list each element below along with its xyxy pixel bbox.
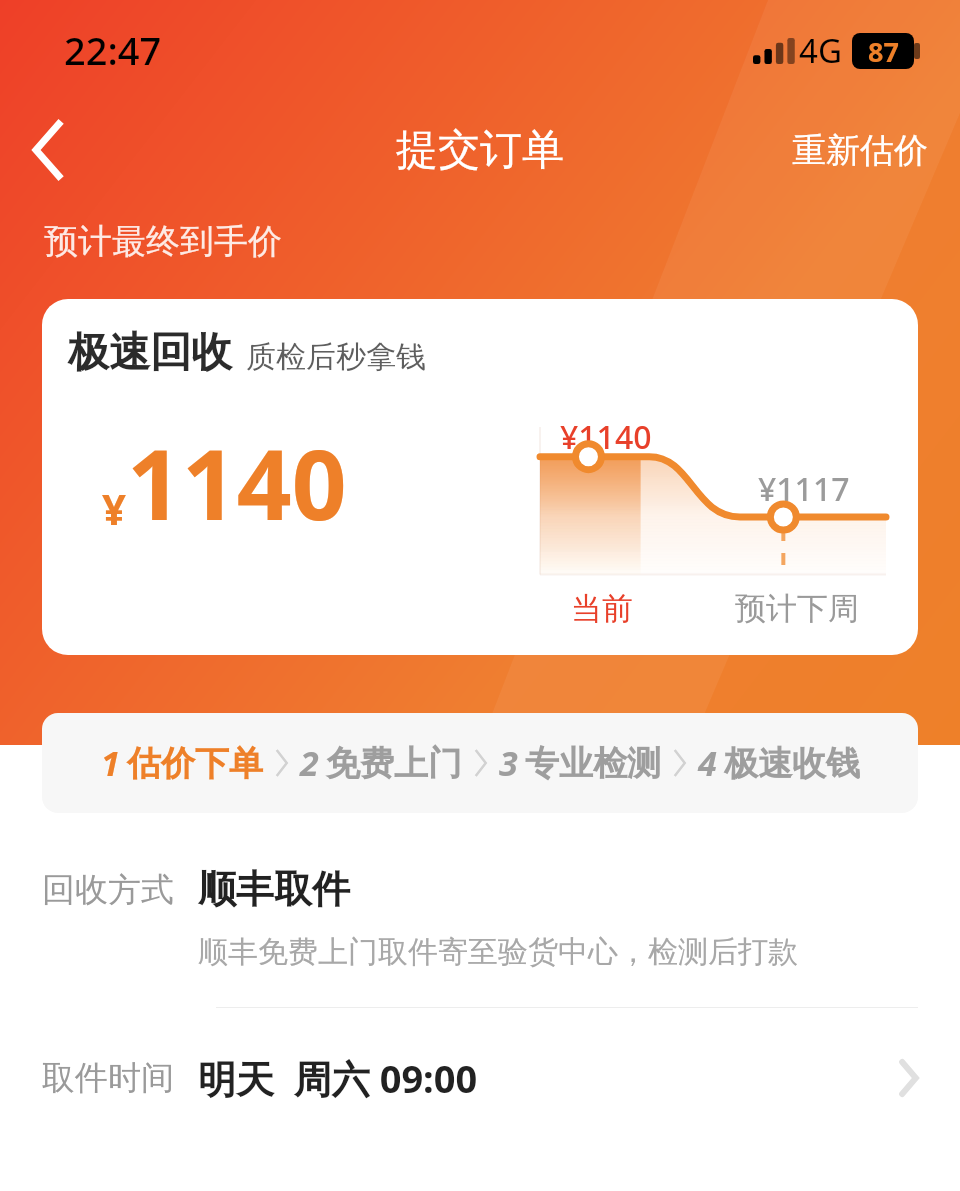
staticText: 提交订单	[396, 124, 564, 177]
staticText: ¥	[102, 480, 127, 537]
staticText: 1140	[127, 417, 347, 548]
staticText: 22:47	[64, 24, 162, 76]
staticText: 估价下单	[127, 742, 263, 785]
staticText: 重新估价	[792, 129, 928, 172]
staticText: 预计下周	[702, 589, 892, 628]
staticText: 3	[499, 740, 518, 786]
staticText: 明天 周六 09:00	[198, 1052, 478, 1104]
staticText: 回收方式	[42, 869, 174, 911]
staticText: 顺丰取件	[198, 865, 350, 913]
staticText: 4G	[799, 28, 842, 73]
staticText: 4	[698, 740, 717, 786]
staticText: 预计最终到手价	[44, 220, 282, 263]
staticText: 取件时间	[42, 1057, 174, 1099]
staticText: ¥1140	[560, 415, 652, 459]
staticText: 1	[101, 740, 120, 786]
staticText: 顺丰免费上门取件寄至验货中心，检测后打款	[198, 933, 798, 971]
button[interactable]: 重新估价	[760, 111, 960, 190]
button[interactable]: Back	[0, 102, 96, 198]
staticText: 专业检测	[525, 742, 661, 785]
button[interactable]: 1	[42, 713, 918, 813]
staticText: 极速回收	[68, 327, 232, 379]
staticText: 质检后秒拿钱	[246, 338, 426, 376]
staticText: ¥1117	[758, 467, 850, 511]
staticText: 当前	[554, 589, 650, 628]
staticText: 免费上门	[326, 742, 462, 785]
staticText: 87	[868, 33, 899, 69]
staticText: 2	[300, 740, 319, 786]
staticText: 极速收钱	[724, 742, 860, 785]
button[interactable]: 极速回收	[42, 299, 918, 655]
button[interactable]: 取件时间	[0, 1044, 960, 1112]
button[interactable]: 回收方式	[0, 855, 960, 985]
